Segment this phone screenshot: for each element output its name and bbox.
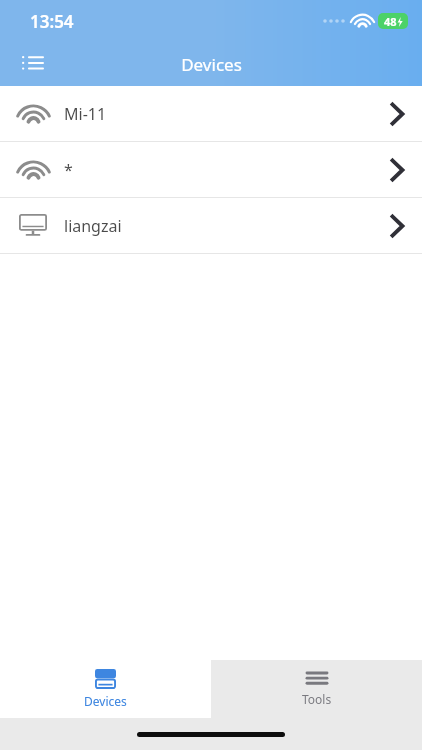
staticText: Devices bbox=[181, 53, 242, 76]
staticText: * bbox=[64, 159, 391, 181]
button[interactable]: Tools bbox=[211, 660, 422, 718]
button[interactable]: Devices bbox=[0, 660, 211, 718]
button[interactable]: Mi-11 bbox=[0, 86, 422, 141]
staticText: Tools bbox=[302, 691, 332, 707]
staticText: 13:54 bbox=[30, 10, 74, 33]
button[interactable]: liangzai bbox=[0, 198, 422, 253]
staticText: liangzai bbox=[64, 215, 391, 237]
staticText: Mi-11 bbox=[64, 103, 391, 125]
staticText: 48 bbox=[384, 14, 397, 29]
button[interactable]: Menu bbox=[12, 44, 52, 84]
button[interactable]: * bbox=[0, 142, 422, 197]
staticText: Devices bbox=[84, 693, 127, 709]
